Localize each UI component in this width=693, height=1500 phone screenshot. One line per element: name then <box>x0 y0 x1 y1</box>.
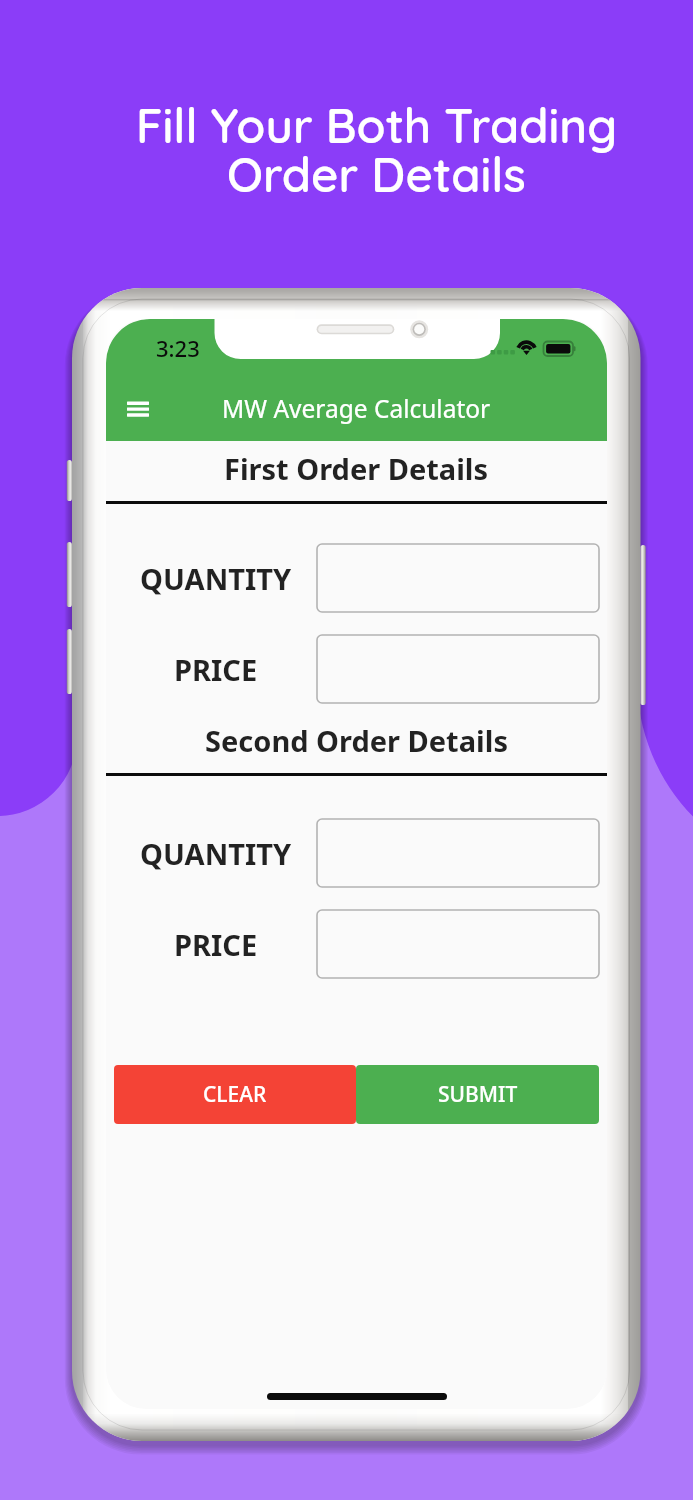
staticText: 3:23 <box>156 333 200 363</box>
staticText: MW Average Calculator <box>222 392 491 425</box>
button[interactable] <box>317 544 599 612</box>
staticText: SUBMIT <box>438 1080 518 1109</box>
staticText: First Order Details <box>224 449 489 488</box>
staticText: PRICE <box>174 925 258 964</box>
staticText: PRICE <box>174 650 258 689</box>
button[interactable]: SUBMIT <box>356 1065 599 1124</box>
button[interactable] <box>317 819 599 887</box>
staticText: QUANTITY <box>140 834 292 873</box>
button[interactable] <box>317 635 599 703</box>
staticText: Second Order Details <box>205 721 508 760</box>
button[interactable] <box>317 910 599 978</box>
staticText: QUANTITY <box>140 559 292 598</box>
button[interactable]: CLEAR <box>114 1065 356 1124</box>
staticText: Fill Your Both Trading Order Details <box>30 96 693 204</box>
button[interactable]: Open navigation menu <box>110 388 166 432</box>
staticText: CLEAR <box>203 1080 267 1109</box>
